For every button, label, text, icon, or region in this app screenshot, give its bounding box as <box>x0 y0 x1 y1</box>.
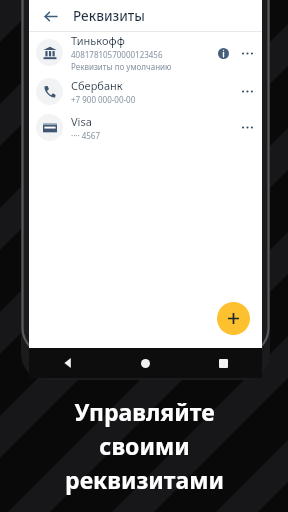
staticText: Тинькофф <box>71 33 125 48</box>
button[interactable]: Ещё <box>238 118 256 136</box>
staticText: реквизитами <box>65 464 224 495</box>
button[interactable]: Назад <box>29 348 106 378</box>
button[interactable]: Назад <box>37 3 63 29</box>
button[interactable]: Visa <box>29 109 262 145</box>
staticText: Visa <box>71 114 92 129</box>
staticText: ···· 4567 <box>71 130 100 141</box>
button[interactable]: Сбербанк <box>29 73 262 109</box>
staticText: Реквизиты <box>73 7 145 25</box>
button[interactable]: Тинькофф <box>29 32 262 73</box>
staticText: +7 900 000-00-00 <box>71 94 136 105</box>
button[interactable]: Недавние приложения <box>184 348 262 378</box>
staticText: 40817810570000123456 <box>71 49 163 60</box>
staticText: Сбербанк <box>71 78 123 93</box>
staticText: Реквизиты по умолчанию <box>71 61 172 72</box>
button[interactable]: Главный экран <box>106 348 184 378</box>
button[interactable]: Добавить реквизиты <box>217 302 250 335</box>
staticText: своими <box>99 430 190 461</box>
staticText: Управляйте <box>74 396 215 427</box>
button[interactable]: Информация <box>214 44 232 62</box>
button[interactable]: Ещё <box>238 82 256 100</box>
button[interactable]: Ещё <box>238 44 256 62</box>
